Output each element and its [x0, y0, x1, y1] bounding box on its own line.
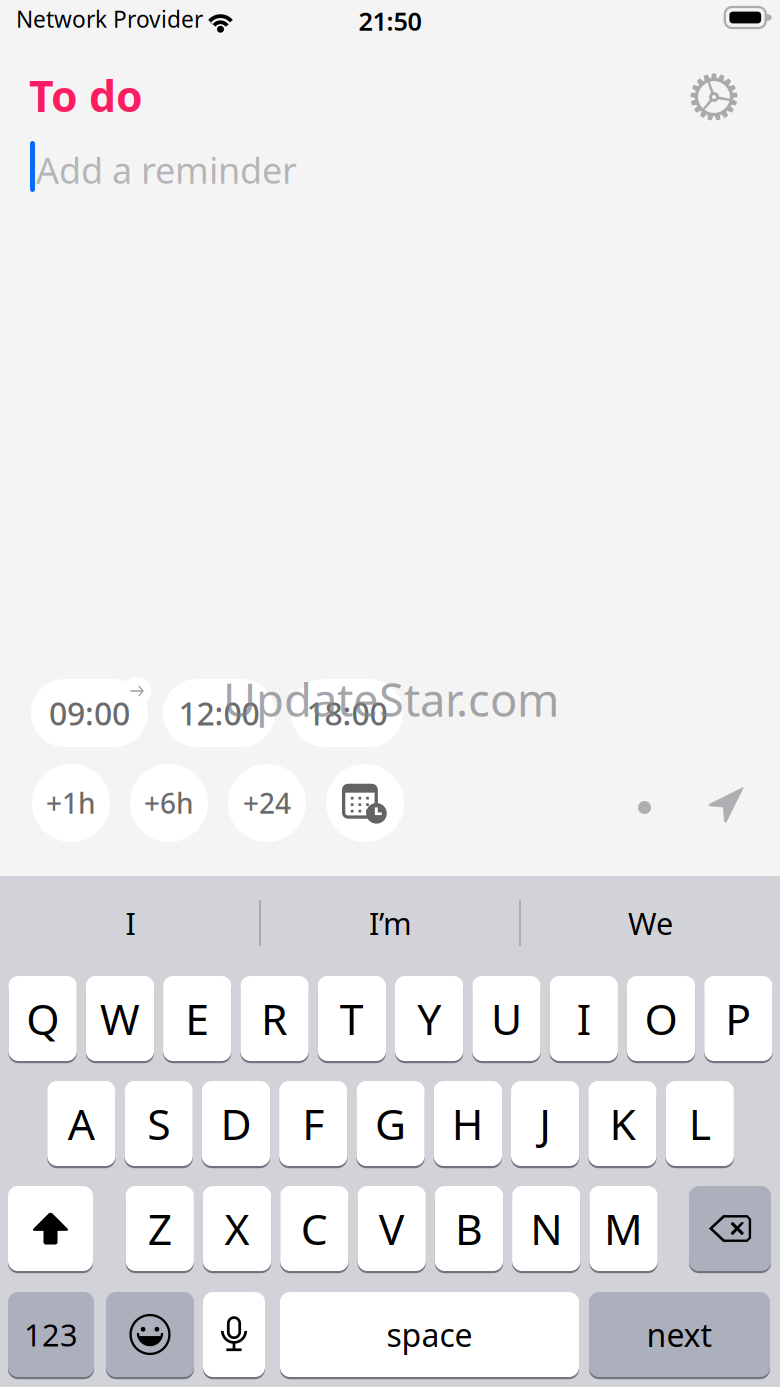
staticText: Y [417, 990, 441, 1047]
staticText: W [100, 990, 140, 1047]
button[interactable]: next [589, 1292, 770, 1377]
staticText: K [609, 1095, 635, 1152]
staticText: UpdateStar.com [223, 669, 559, 729]
staticText: Network Provider [16, 4, 203, 34]
button[interactable]: Z [126, 1186, 194, 1271]
button[interactable]: D [202, 1081, 270, 1166]
staticText: P [725, 990, 751, 1047]
staticText: To do [29, 67, 143, 124]
staticText: 21:50 [358, 4, 421, 38]
button[interactable]: I [550, 976, 618, 1061]
staticText: O [644, 990, 677, 1047]
button[interactable]: space [280, 1292, 579, 1377]
staticText: L [689, 1095, 711, 1152]
button[interactable]: R [240, 976, 309, 1061]
button[interactable]: Pick date and time [326, 764, 404, 842]
staticText: I [125, 903, 135, 943]
button[interactable] [689, 1186, 771, 1271]
button[interactable]: +24 [228, 764, 306, 842]
staticText: Add a reminder [36, 146, 297, 194]
staticText: C [301, 1200, 328, 1257]
button[interactable]: W [86, 976, 154, 1061]
staticText: space [386, 1313, 472, 1356]
staticText: T [340, 990, 364, 1047]
staticText: next [646, 1313, 712, 1356]
staticText: J [539, 1095, 551, 1152]
button[interactable]: Q [8, 976, 77, 1061]
button[interactable]: X [203, 1186, 271, 1271]
button[interactable] [8, 1186, 93, 1271]
button[interactable]: M [589, 1186, 658, 1271]
button[interactable]: U [472, 976, 541, 1061]
staticText: 12:00 [178, 692, 259, 734]
button[interactable]: S [124, 1081, 193, 1166]
button[interactable] [106, 1292, 194, 1377]
staticText: D [220, 1095, 251, 1152]
staticText: S [147, 1095, 170, 1152]
staticText: +24 [243, 784, 291, 822]
staticText: +1h [46, 784, 96, 822]
staticText: A [68, 1095, 95, 1152]
staticText: M [604, 1200, 643, 1257]
staticText: 18:00 [306, 692, 387, 734]
button[interactable]: V [357, 1186, 426, 1271]
button[interactable]: B [435, 1186, 503, 1271]
button[interactable]: Settings [683, 66, 745, 128]
staticText: R [261, 990, 288, 1047]
staticText: F [302, 1095, 324, 1152]
button[interactable]: E [163, 976, 231, 1061]
button[interactable]: 12:00 [163, 679, 275, 747]
staticText: G [375, 1095, 406, 1152]
staticText: N [530, 1200, 562, 1257]
staticText: 09:00 [49, 692, 130, 734]
button[interactable]: 09:00 [31, 679, 148, 747]
button[interactable]: F [279, 1081, 347, 1166]
button[interactable]: N [512, 1186, 580, 1271]
button[interactable]: 18:00 [291, 679, 403, 747]
staticText: I [577, 990, 591, 1047]
button[interactable]: Send [698, 777, 754, 833]
staticText: X [224, 1200, 249, 1257]
button[interactable]: +1h [32, 764, 110, 842]
button[interactable]: +6h [130, 764, 208, 842]
button[interactable]: O [627, 976, 695, 1061]
staticText: H [452, 1095, 484, 1152]
staticText: I’m [369, 903, 412, 943]
button[interactable]: T [318, 976, 386, 1061]
staticText: Q [26, 990, 59, 1047]
button[interactable]: G [356, 1081, 425, 1166]
staticText: 123 [24, 1314, 78, 1355]
staticText: U [491, 990, 522, 1047]
button[interactable]: Y [395, 976, 463, 1061]
button[interactable]: H [434, 1081, 502, 1166]
button[interactable]: J [511, 1081, 579, 1166]
staticText: We [628, 903, 673, 943]
button[interactable]: I [3, 876, 258, 970]
button[interactable]: L [666, 1081, 734, 1166]
button[interactable]: C [280, 1186, 348, 1271]
button[interactable]: P [704, 976, 772, 1061]
button[interactable] [203, 1292, 265, 1377]
button[interactable]: K [588, 1081, 657, 1166]
staticText: E [185, 990, 209, 1047]
staticText: Z [148, 1200, 172, 1257]
button[interactable]: I’m [263, 876, 518, 970]
button[interactable]: A [47, 1081, 115, 1166]
staticText: B [455, 1200, 483, 1257]
button[interactable]: We [523, 876, 778, 970]
staticText: V [379, 1200, 405, 1257]
staticText: +6h [144, 784, 194, 822]
button[interactable]: 123 [8, 1292, 94, 1377]
